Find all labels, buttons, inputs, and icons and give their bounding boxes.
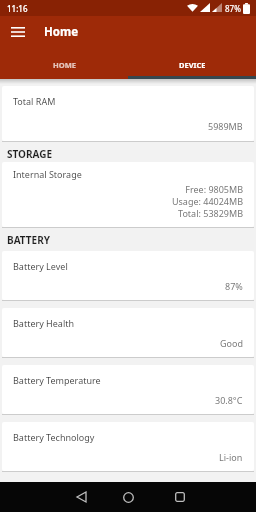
staticText: 87% — [225, 280, 243, 292]
staticText: 87% — [225, 3, 241, 14]
button[interactable] — [168, 485, 192, 509]
staticText: 5989MB — [208, 120, 243, 132]
button[interactable] — [116, 485, 140, 509]
button[interactable]: Total RAM — [2, 86, 254, 141]
staticText: STORAGE — [7, 147, 53, 161]
staticText: HOME — [53, 60, 76, 70]
button[interactable] — [6, 20, 30, 44]
staticText: Good — [220, 337, 243, 349]
button[interactable]: Battery Technology — [2, 422, 254, 471]
button[interactable]: Battery Temperature — [2, 365, 254, 414]
staticText: Li-ion — [219, 451, 243, 463]
staticText: Free: 9805MB Usage: 44024MB Total: 53829… — [171, 183, 243, 219]
button[interactable] — [69, 485, 93, 509]
button[interactable]: Battery Level — [2, 251, 254, 300]
staticText: Battery Technology — [13, 431, 95, 443]
staticText: DEVICE — [179, 60, 206, 70]
staticText: Battery Level — [13, 260, 68, 272]
staticText: 11:16 — [7, 3, 28, 14]
staticText: Battery Temperature — [13, 374, 101, 386]
staticText: BATTERY — [7, 233, 51, 247]
staticText: Internal Storage — [13, 168, 82, 180]
staticText: 30.8°C — [215, 394, 243, 406]
button[interactable]: Internal Storage — [2, 162, 254, 227]
staticText: Total RAM — [13, 95, 56, 107]
button[interactable]: Battery Health — [2, 308, 254, 357]
staticText: Battery Health — [13, 317, 75, 329]
button[interactable]: HOME — [0, 51, 128, 79]
staticText: Home — [44, 24, 79, 40]
button[interactable]: DEVICE — [128, 51, 256, 79]
